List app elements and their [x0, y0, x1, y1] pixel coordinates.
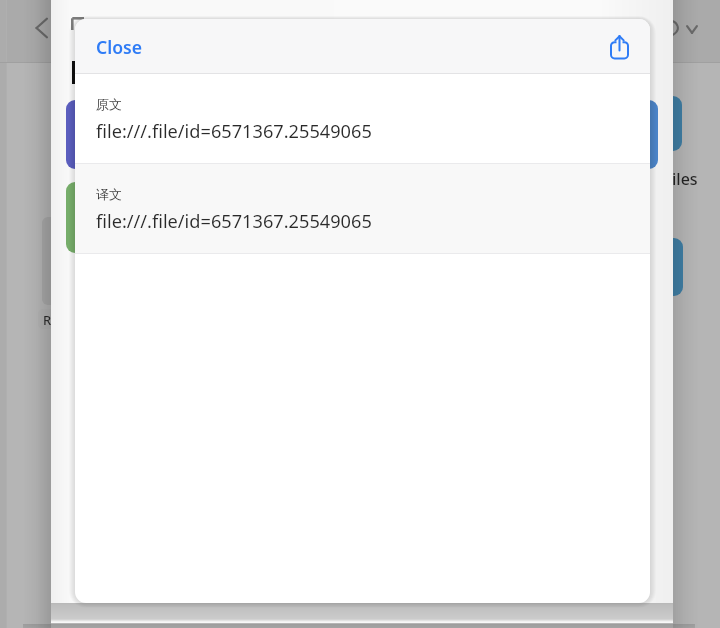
button[interactable]: 原文 — [75, 74, 650, 164]
button[interactable]: 译文 — [75, 164, 650, 254]
staticText: file:///.file/id=6571367.25549065 — [96, 119, 372, 144]
staticText: 原文 — [96, 96, 122, 112]
staticText: Close — [96, 35, 143, 59]
staticText: 译文 — [96, 186, 122, 202]
staticText: file:///.file/id=6571367.25549065 — [96, 209, 372, 234]
button[interactable]: Expand — [686, 25, 698, 34]
button[interactable]: Close — [87, 29, 152, 65]
button[interactable]: Share — [602, 30, 636, 64]
button[interactable]: Back — [34, 17, 48, 39]
staticText: R — [43, 311, 52, 329]
staticText: iles — [672, 168, 698, 190]
